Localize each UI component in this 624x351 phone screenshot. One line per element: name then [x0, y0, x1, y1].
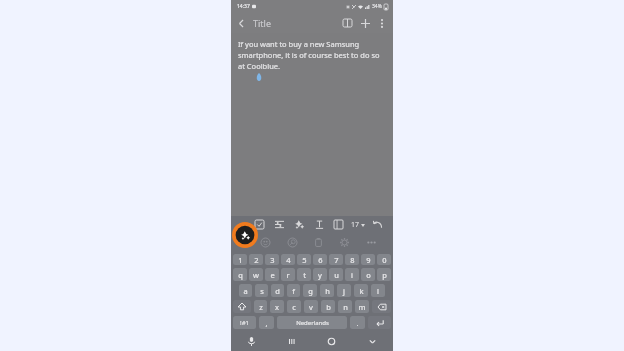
button[interactable]: Recents [271, 331, 311, 351]
staticText: . [356, 318, 359, 328]
staticText: f [292, 286, 295, 296]
button[interactable]: Undo [370, 217, 385, 232]
staticText: e [270, 270, 275, 280]
button[interactable]: q [233, 268, 247, 281]
button[interactable]: k [354, 284, 368, 297]
staticText: m [358, 302, 366, 312]
button[interactable]: 0 [377, 254, 391, 265]
staticText: 1 [238, 255, 243, 265]
staticText: h [325, 286, 330, 296]
button[interactable]: c [287, 300, 301, 313]
button[interactable]: p [377, 268, 391, 281]
button[interactable]: Hide keyboard [352, 331, 393, 351]
staticText: v [309, 302, 313, 312]
button[interactable]: Add [356, 14, 374, 32]
staticText: 5 [302, 255, 307, 265]
button[interactable]: Back [233, 15, 249, 31]
staticText: x [275, 302, 279, 312]
button[interactable]: Backspace [372, 300, 391, 313]
button[interactable]: 17 [351, 220, 365, 230]
button[interactable]: Checklist [252, 217, 267, 232]
button[interactable]: Shift [233, 300, 251, 313]
staticText: l [377, 286, 379, 296]
staticText: o [366, 270, 371, 280]
button[interactable]: Title [253, 17, 271, 29]
button[interactable]: Clipboard [311, 235, 326, 250]
button[interactable]: 7 [329, 254, 343, 265]
staticText: q [238, 270, 243, 280]
button[interactable]: View mode [338, 14, 356, 32]
button[interactable]: 6 [313, 254, 327, 265]
button[interactable]: m [355, 300, 369, 313]
button[interactable]: f [287, 284, 300, 297]
staticText: 0 [382, 255, 387, 265]
staticText: a [243, 286, 248, 296]
button[interactable]: More [364, 235, 379, 250]
button[interactable]: n [338, 300, 352, 313]
staticText: 3 [270, 255, 275, 265]
button[interactable]: Voice input [231, 331, 271, 351]
button[interactable]: Attach [285, 235, 300, 250]
button[interactable]: i [345, 268, 359, 281]
staticText: r [286, 270, 290, 280]
button[interactable]: s [255, 284, 268, 297]
staticText: z [259, 302, 263, 312]
button[interactable]: More options [374, 15, 390, 31]
button[interactable]: !#1 [233, 316, 256, 329]
button[interactable]: 3 [265, 254, 279, 265]
button[interactable]: Text format [312, 217, 327, 232]
button[interactable]: x [270, 300, 284, 313]
staticText: 6 [318, 255, 323, 265]
staticText: d [275, 286, 280, 296]
button[interactable]: d [271, 284, 284, 297]
staticText: p [382, 270, 387, 280]
staticText: 8 [350, 255, 355, 265]
button[interactable]: h [320, 284, 334, 297]
button[interactable]: b [321, 300, 335, 313]
staticText: y [318, 270, 322, 280]
staticText: Nederlands [296, 319, 329, 327]
button[interactable]: 1 [233, 254, 247, 265]
staticText: 34% [372, 3, 382, 10]
button[interactable]: u [329, 268, 343, 281]
button[interactable]: v [304, 300, 318, 313]
button[interactable]: . [350, 316, 365, 329]
button[interactable]: Paragraph format [272, 217, 287, 232]
button[interactable]: Handwriting [241, 231, 250, 240]
button[interactable]: Home [311, 331, 352, 351]
button[interactable]: Settings [337, 235, 352, 250]
button[interactable]: Nederlands [277, 316, 347, 329]
button[interactable]: 5 [297, 254, 311, 265]
button[interactable]: 9 [361, 254, 375, 265]
staticText: !#1 [240, 319, 249, 327]
button[interactable]: 2 [249, 254, 263, 265]
button[interactable]: t [297, 268, 311, 281]
button[interactable]: j [337, 284, 351, 297]
staticText: 14:37 [237, 3, 250, 10]
button[interactable]: a [239, 284, 252, 297]
button[interactable]: o [361, 268, 375, 281]
staticText: u [334, 270, 339, 280]
button[interactable]: Emoji [258, 235, 273, 250]
staticText: g [308, 286, 313, 296]
button[interactable]: y [313, 268, 327, 281]
button[interactable]: Enter [368, 316, 391, 329]
button[interactable]: Insert table [331, 217, 346, 232]
button[interactable]: l [371, 284, 385, 297]
button[interactable]: AI assist [292, 217, 307, 232]
staticText: k [359, 286, 364, 296]
staticText: c [292, 302, 296, 312]
button[interactable]: 4 [281, 254, 295, 265]
staticText: j [343, 286, 345, 296]
staticText: 4 [286, 255, 291, 265]
button[interactable]: , [259, 316, 274, 329]
button[interactable]: r [281, 268, 295, 281]
staticText: w [253, 270, 259, 280]
button[interactable]: 8 [345, 254, 359, 265]
button[interactable]: e [265, 268, 279, 281]
staticText: 7 [334, 255, 339, 265]
button[interactable]: z [254, 300, 267, 313]
button[interactable]: g [303, 284, 317, 297]
button[interactable]: w [249, 268, 263, 281]
staticText: , [265, 318, 268, 328]
